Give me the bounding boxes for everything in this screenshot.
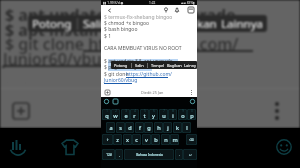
button[interactable]: m xyxy=(170,134,179,145)
staticText: 1 xyxy=(106,109,108,113)
button[interactable]: 7 xyxy=(159,109,168,120)
button[interactable]: 4 xyxy=(130,109,139,120)
button[interactable]: j xyxy=(163,122,172,133)
staticText: $ 1 xyxy=(104,33,112,40)
button[interactable]: Reminder xyxy=(174,7,180,13)
button[interactable]: Emoji xyxy=(276,139,292,155)
button[interactable]: n xyxy=(161,134,170,145)
button[interactable]: . xyxy=(175,149,183,160)
button[interactable]: More options xyxy=(189,90,193,95)
button[interactable]: Lainnya xyxy=(221,16,263,32)
staticText: g xyxy=(147,124,151,132)
button[interactable]: Add xyxy=(13,103,29,119)
button[interactable]: Potong xyxy=(114,63,128,68)
staticText: m xyxy=(172,136,178,144)
staticText: Diedit 25 Jan xyxy=(141,90,164,95)
staticText: p xyxy=(190,112,194,120)
button[interactable]: Bahasa Indonesia xyxy=(124,149,174,160)
button[interactable]: Archive xyxy=(188,7,194,13)
staticText: Bagikan xyxy=(167,63,182,68)
staticText: b xyxy=(154,136,158,144)
button[interactable]: h xyxy=(154,122,163,133)
staticText: i xyxy=(172,112,174,120)
staticText: ⌫ xyxy=(189,138,194,142)
button[interactable]: 8 xyxy=(168,109,177,120)
staticText: u xyxy=(162,112,166,120)
button[interactable]: 3 xyxy=(121,109,130,120)
staticText: x xyxy=(126,136,129,144)
button[interactable]: Tempel xyxy=(151,63,165,68)
button[interactable]: x xyxy=(123,134,132,145)
staticText: Salin xyxy=(83,16,109,32)
staticText: c xyxy=(135,136,138,144)
staticText: 6 xyxy=(153,109,155,113)
staticText: Junior60/vbug xyxy=(3,48,112,70)
button[interactable]: Potong xyxy=(32,16,72,32)
button[interactable]: 0 xyxy=(187,109,196,120)
staticText: Potong xyxy=(32,16,72,32)
button[interactable]: b xyxy=(151,134,160,145)
staticText: 0 xyxy=(191,109,193,113)
staticText: a xyxy=(109,124,113,132)
staticText: r xyxy=(133,112,136,120)
button[interactable]: ⇧ xyxy=(102,134,113,145)
button[interactable]: Settings xyxy=(190,99,195,104)
staticText: Lainnya xyxy=(184,63,197,68)
button[interactable]: 2 xyxy=(111,109,120,120)
button[interactable]: kan xyxy=(197,16,217,32)
staticText: s xyxy=(119,124,122,132)
button[interactable]: Gestures xyxy=(9,138,27,156)
staticText: 5 xyxy=(144,109,146,113)
staticText: 4 xyxy=(134,109,136,113)
button[interactable]: s xyxy=(116,122,125,133)
button[interactable]: Bagikan xyxy=(167,63,182,68)
staticText: q xyxy=(105,112,109,120)
staticText: ⇧ xyxy=(106,138,109,142)
button[interactable]: Pin xyxy=(163,7,169,13)
staticText: ▰▰ 83%▮ xyxy=(181,1,195,5)
staticText: 12# xyxy=(106,153,112,157)
button[interactable]: More options xyxy=(273,102,281,120)
staticText: Salin xyxy=(135,63,144,68)
button[interactable]: Back xyxy=(107,8,112,13)
button[interactable]: , xyxy=(115,149,123,160)
button[interactable]: l xyxy=(182,122,191,133)
staticText: $ git clone xyxy=(104,71,130,78)
button[interactable]: Salin xyxy=(135,63,144,68)
button[interactable]: 1 xyxy=(102,109,111,120)
staticText: w xyxy=(113,112,118,120)
button[interactable]: f xyxy=(135,122,144,133)
staticText: , xyxy=(119,153,120,157)
button[interactable]: d xyxy=(125,122,134,133)
button[interactable]: c xyxy=(132,134,141,145)
staticText: ▮▮ 1.99 K/d ● xyxy=(103,1,124,5)
button[interactable]: Google xyxy=(104,99,109,104)
button[interactable]: Stickers xyxy=(113,99,118,104)
staticText: 2 xyxy=(115,109,117,113)
button[interactable]: Lainnya xyxy=(184,63,197,68)
button[interactable]: v xyxy=(142,134,151,145)
button[interactable]: ↵ xyxy=(183,149,197,160)
button[interactable]: 9 xyxy=(178,109,187,120)
button[interactable]: 5 xyxy=(140,109,149,120)
staticText: Lainnya xyxy=(221,16,263,32)
button[interactable]: Add xyxy=(105,90,110,95)
button[interactable]: k xyxy=(173,122,182,133)
staticText: Potong xyxy=(114,63,128,68)
staticText: $ apt update && apt upgrade xyxy=(5,4,236,26)
staticText: $ chmod +x bingoo xyxy=(104,20,150,27)
staticText: $ apt install git xyxy=(5,19,125,41)
button[interactable]: a xyxy=(106,122,115,133)
staticText: j xyxy=(167,124,169,132)
staticText: 7 xyxy=(163,109,165,113)
button[interactable]: Salin xyxy=(83,16,109,32)
button[interactable]: g xyxy=(144,122,153,133)
staticText: ↵ xyxy=(189,153,192,157)
button[interactable]: z xyxy=(113,134,122,145)
button[interactable]: ⌫ xyxy=(186,134,197,145)
button[interactable]: 12# xyxy=(102,149,115,160)
staticText: 9 xyxy=(182,109,184,113)
staticText: $ apt update && apt upgrade xyxy=(104,58,173,65)
button[interactable]: 6 xyxy=(149,109,158,120)
button[interactable]: Theme xyxy=(61,138,79,156)
